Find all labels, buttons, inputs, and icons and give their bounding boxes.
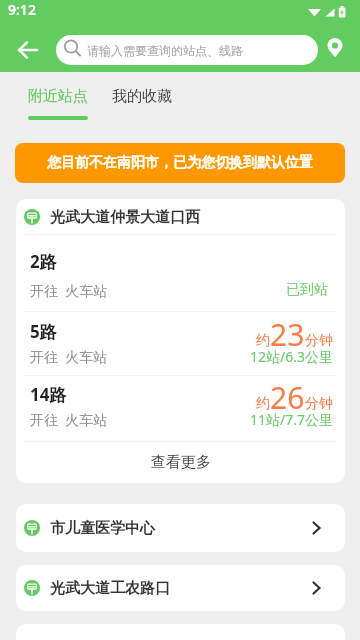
staticText: 2路 — [30, 250, 57, 273]
staticText: 光武大道仲景大道口西 — [50, 208, 200, 227]
button[interactable]: 您目前不在南阳市，已为您切换到默认位置 — [15, 143, 345, 183]
button[interactable]: 查看更多 — [16, 441, 345, 483]
staticText: 26 — [270, 377, 305, 418]
staticText: 分钟 — [305, 332, 333, 350]
staticText: 14路 — [30, 383, 67, 406]
button[interactable]: 请输入需要查询的站点、线路 — [56, 35, 318, 65]
staticText: 已到站 — [286, 281, 328, 299]
staticText: 12站/6.3公里 — [250, 347, 333, 366]
staticText: 开往 火车站 — [30, 281, 108, 300]
staticText: 约 — [256, 395, 270, 413]
button[interactable] — [0, 28, 56, 72]
staticText: 市儿童医学中心 — [50, 519, 155, 538]
button[interactable]: 光武大道工农路口 — [16, 565, 345, 611]
button[interactable]: 5路 — [16, 311, 345, 375]
staticText: 约 — [256, 332, 270, 350]
staticText: 请输入需要查询的站点、线路 — [87, 43, 243, 58]
button[interactable]: 市儿童医学中心 — [16, 504, 345, 552]
staticText: 9:12 — [8, 0, 36, 19]
button[interactable]: 附近站点 — [0, 0, 60, 19]
staticText: 23 — [270, 314, 305, 355]
button[interactable]: 我的收藏 — [0, 0, 60, 19]
staticText: 查看更多 — [151, 453, 211, 472]
staticText: 光武大道工农路口 — [50, 579, 170, 598]
button[interactable]: 14路 — [16, 375, 345, 441]
staticText: 您目前不在南阳市，已为您切换到默认位置 — [47, 154, 313, 172]
button[interactable]: 2路 — [16, 244, 345, 311]
staticText: 11站/7.7公里 — [250, 410, 333, 429]
button[interactable] — [320, 28, 360, 72]
staticText: 分钟 — [305, 395, 333, 413]
staticText: 开往 火车站 — [30, 347, 108, 366]
staticText: 开往 火车站 — [30, 410, 108, 429]
staticText: 5路 — [30, 320, 57, 343]
